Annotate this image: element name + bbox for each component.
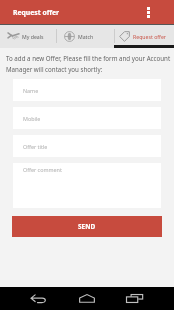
staticText: To add a new Offer, Please fill the form… [6,54,172,73]
button[interactable]: Offer title [13,135,161,157]
button[interactable]: Back [26,287,50,310]
staticText: Match [78,33,94,40]
button[interactable]: My deals [0,24,56,48]
staticText: Offer comment [23,166,62,173]
staticText: Mobile [23,115,41,122]
button[interactable]: Mobile [13,107,161,129]
button[interactable]: Offer comment [13,163,161,208]
button[interactable]: Request offer [115,24,174,48]
staticText: SEND [78,222,96,231]
button[interactable]: More options [138,0,158,24]
button[interactable]: Recent apps [122,287,146,310]
button[interactable]: Home [75,287,99,310]
staticText: Offer title [23,143,48,150]
button[interactable]: Name [13,79,161,101]
staticText: Request offer [133,33,166,40]
staticText: My deals [22,33,44,40]
button[interactable]: Match [57,24,114,48]
button[interactable]: SEND [12,216,162,237]
staticText: Request offer [13,8,60,17]
staticText: Name [23,87,39,94]
